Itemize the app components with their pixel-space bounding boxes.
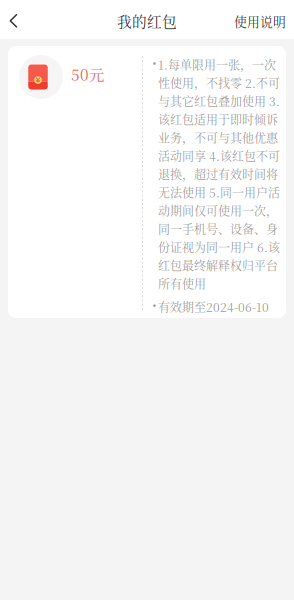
- staticText: 50元: [71, 63, 104, 85]
- staticText: 我的红包: [117, 10, 177, 32]
- staticText: 有效期至2024-06-10: [158, 298, 269, 315]
- button[interactable]: 使用说明: [234, 0, 286, 39]
- staticText: 使用说明: [234, 12, 286, 30]
- staticText: 1.每单限用一张，一次性使用，不找零 2.不可与其它红包叠加使用 3.该红包适用…: [158, 56, 280, 292]
- button[interactable]: 返回: [9, 0, 49, 39]
